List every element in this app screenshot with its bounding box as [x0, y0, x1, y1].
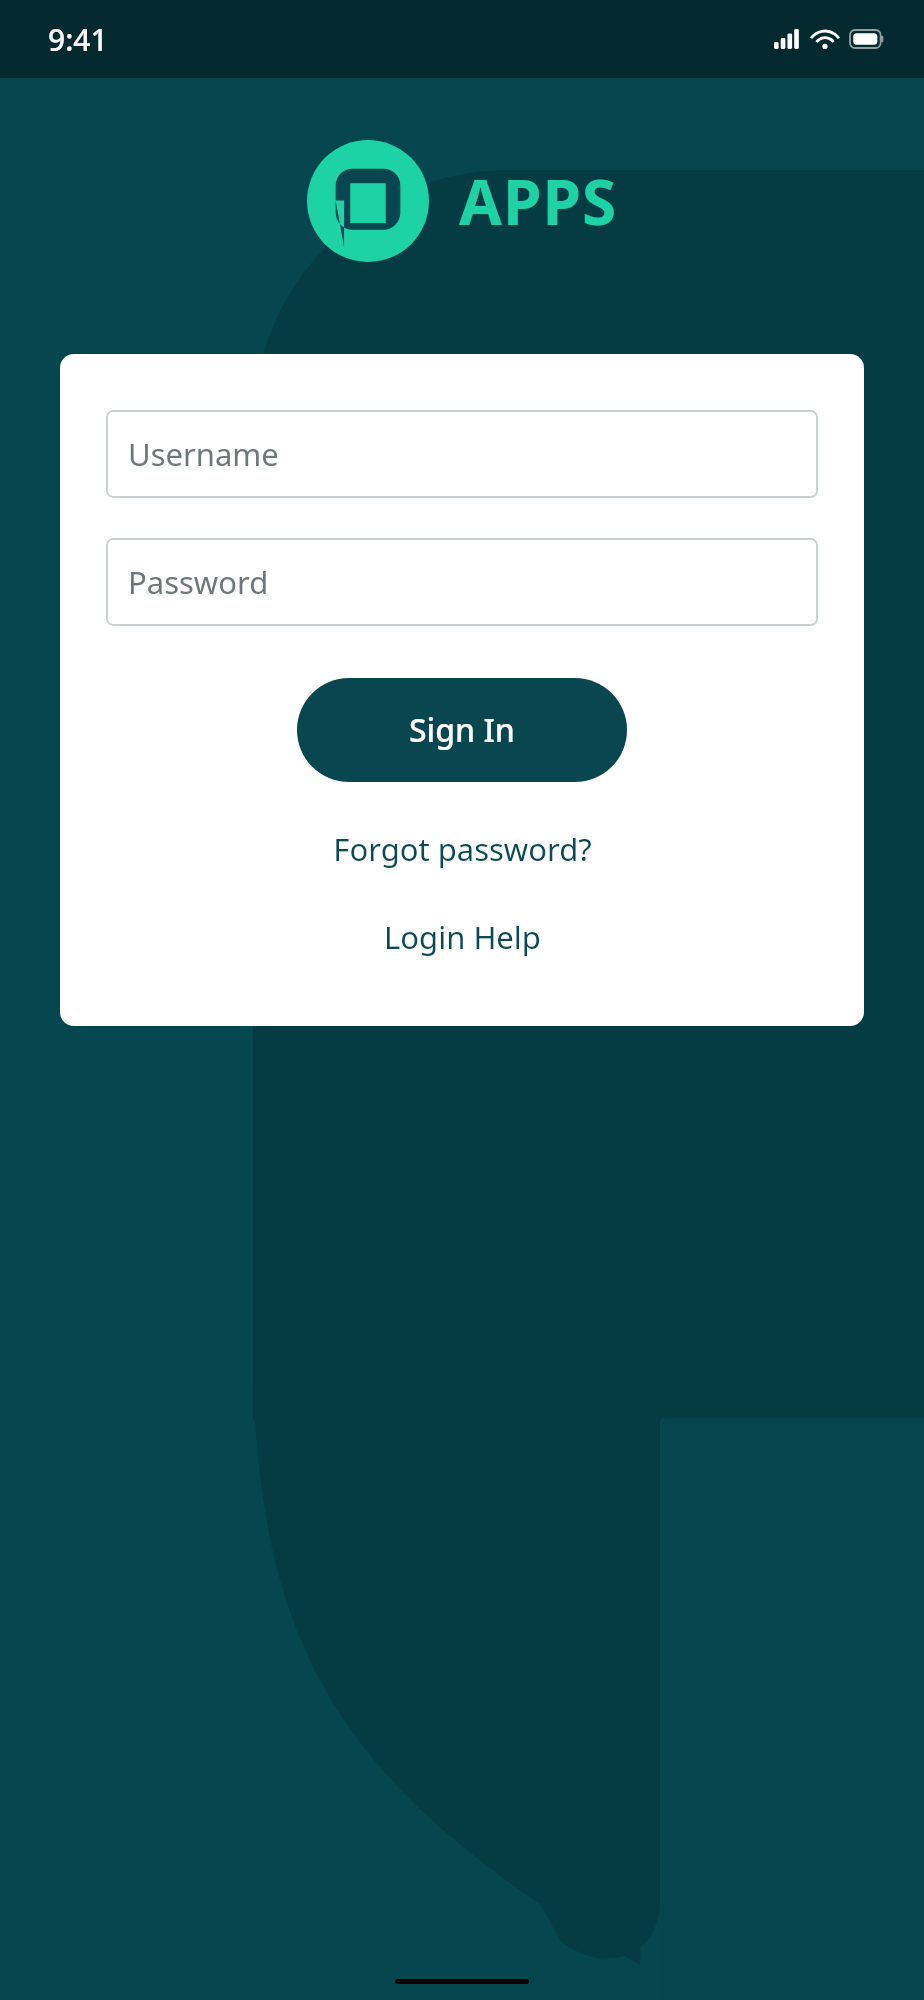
- staticText: Login Help: [384, 916, 541, 958]
- staticText: Password: [128, 561, 269, 603]
- button[interactable]: Forgot password?: [106, 816, 818, 882]
- button[interactable]: Password: [106, 538, 818, 626]
- staticText: Forgot password?: [333, 828, 592, 870]
- staticText: 9:41: [48, 19, 108, 60]
- staticText: Username: [128, 433, 279, 475]
- button[interactable]: Login Help: [106, 904, 818, 970]
- button[interactable]: Sign In: [297, 678, 627, 782]
- staticText: APPS: [459, 159, 618, 243]
- staticText: Sign In: [409, 708, 515, 752]
- button[interactable]: Username: [106, 410, 818, 498]
